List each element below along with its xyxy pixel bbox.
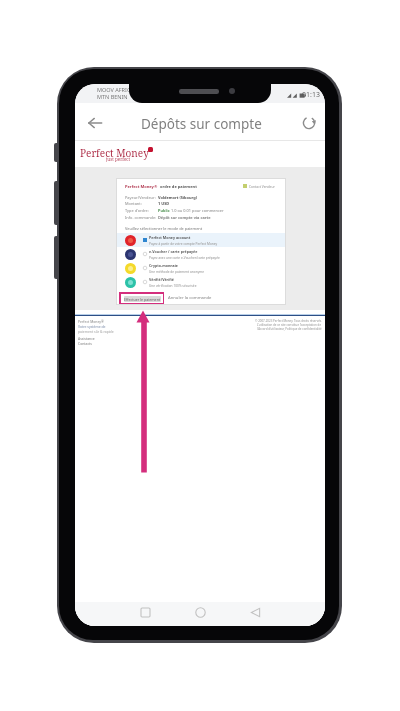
button[interactable]: Contact Vendeur <box>243 184 275 188</box>
staticText: Perfect Money <box>80 146 149 160</box>
staticText: e-Voucher / carte prépayée <box>149 249 198 254</box>
staticText: Dépôt sur compte via carte <box>158 215 211 220</box>
button[interactable]: Annuler la commande <box>168 295 212 301</box>
button[interactable]: Recent apps <box>136 603 154 621</box>
staticText: Une vérification 100% sécurisée <box>149 284 197 288</box>
staticText: Veuillez sélectionner le mode de paiemen… <box>125 226 203 231</box>
staticText: just perfect <box>106 156 131 162</box>
staticText: 1.0 ou 0.01 pour commencer <box>170 208 224 213</box>
staticText: 01:13 <box>302 90 320 100</box>
staticText: Contact Vendeur <box>249 184 275 188</box>
staticText: Effectuer le paiement <box>124 297 161 302</box>
button[interactable]: Crypto-monnaie <box>117 261 285 275</box>
staticText: paiement sûr & rapide <box>78 329 114 334</box>
staticText: 1 USD <box>158 201 170 206</box>
button[interactable]: e-Voucher / carte prépayée <box>117 247 285 261</box>
staticText: Dépôts sur compte <box>141 115 262 133</box>
staticText: Info. commande: <box>125 215 158 220</box>
staticText: Public <box>158 208 170 213</box>
staticText: Perfect Money account <box>149 235 191 240</box>
button[interactable]: Back <box>86 114 104 132</box>
staticText: Type d'ordre: <box>125 208 158 213</box>
staticText: Payez avec une carte e-Voucher/carte pré… <box>149 256 220 260</box>
button[interactable]: Assistance <box>78 336 95 341</box>
button[interactable]: Votre système de <box>78 324 106 329</box>
button[interactable]: Vérifié/Vérifié <box>117 275 285 289</box>
staticText: L'utilisation de ce site constitue l'acc… <box>257 323 322 327</box>
staticText: Voldemort (Sibourg) <box>158 195 198 200</box>
button[interactable]: Home <box>191 603 209 621</box>
button[interactable]: Back <box>246 603 264 621</box>
staticText: Vérifié/Vérifié <box>149 277 174 282</box>
button[interactable]: Refresh <box>300 114 318 132</box>
staticText: © 2007-2023 Perfect Money. Tous droits r… <box>255 319 322 323</box>
button[interactable]: Perfect Money account <box>117 233 285 247</box>
button[interactable]: Contacts <box>78 341 92 346</box>
staticText: Une méthode de paiement anonyme <box>149 270 205 274</box>
staticText: l'Accord d'utilisateur, Politique de con… <box>257 327 322 331</box>
staticText: Crypto-monnaie <box>149 263 178 268</box>
staticText: MTN BENIN <box>97 93 128 100</box>
staticText: Perfect Money® <box>125 184 158 189</box>
staticText: Payeur/Vendeur: <box>125 195 158 200</box>
button[interactable]: Effectuer le paiement <box>124 296 161 302</box>
staticText: Perfect Money® <box>78 319 104 324</box>
staticText: MOOV AFRICA <box>97 86 134 93</box>
staticText: Montant: <box>125 201 158 206</box>
staticText: ordre de paiement <box>160 184 197 189</box>
staticText: Payez à partir de votre compte Perfect M… <box>149 242 218 246</box>
